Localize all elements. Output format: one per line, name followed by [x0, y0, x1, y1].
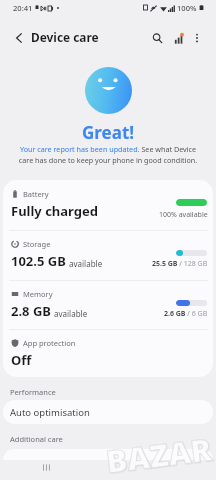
staticText: 25.5 GB / 128 GB	[152, 259, 208, 269]
staticText: 2.8 GB	[11, 302, 51, 320]
button[interactable]	[3, 449, 213, 460]
staticText: Memory	[23, 289, 53, 299]
button[interactable]: Back	[8, 27, 29, 48]
staticText: App protection	[23, 338, 76, 348]
button[interactable]: App protection	[3, 329, 213, 377]
button[interactable]: Auto optimisation	[3, 400, 213, 424]
button[interactable]: Battery	[3, 180, 213, 230]
staticText: Battery	[23, 189, 49, 199]
staticText: 102.5 GB	[11, 252, 66, 270]
staticText: Great!	[82, 121, 135, 144]
button[interactable]: More options	[186, 27, 207, 48]
staticText: available	[69, 258, 103, 269]
staticText: BAZAR	[104, 428, 214, 480]
staticText: 20:41	[13, 3, 33, 13]
button[interactable]: Storage	[3, 230, 213, 280]
staticText: Performance	[10, 387, 56, 397]
staticText: BAZAR	[104, 428, 214, 480]
staticText: Off	[11, 351, 32, 369]
staticText: Your care report has been updated. See w…	[13, 144, 203, 165]
staticText: Auto optimisation	[10, 406, 90, 419]
button[interactable]: Recents	[37, 457, 57, 477]
staticText: Device care	[31, 29, 99, 45]
staticText: Additional care	[10, 434, 63, 444]
staticText: Storage	[23, 239, 51, 249]
button[interactable]: Search	[146, 27, 168, 49]
button[interactable]: Usage statistics	[168, 27, 190, 49]
staticText: available	[54, 308, 88, 319]
staticText: BAZAR	[105, 429, 215, 480]
staticText: Fully charged	[11, 202, 98, 220]
staticText: 2.6 GB / 6 GB	[164, 309, 208, 319]
button[interactable]: Memory	[3, 280, 213, 330]
staticText: 100% available	[159, 210, 208, 220]
staticText: 100%	[177, 3, 197, 13]
